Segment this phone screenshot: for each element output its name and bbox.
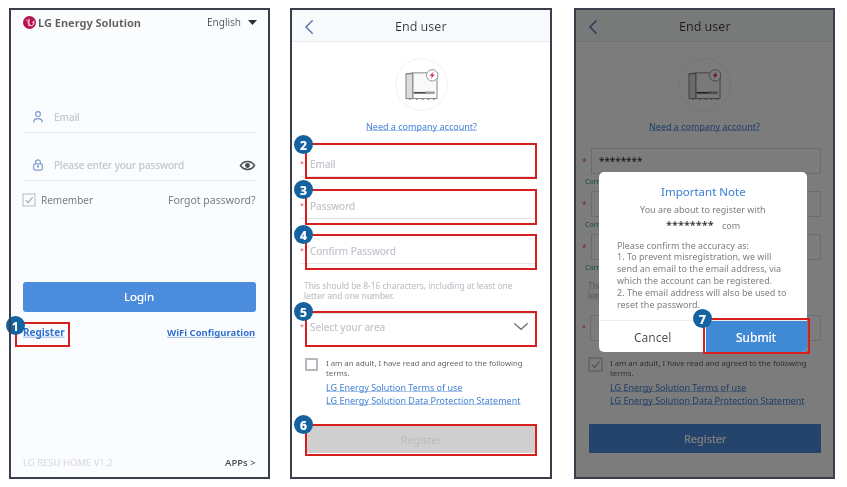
button[interactable]: APPs > — [225, 456, 256, 469]
button[interactable]: Cancel — [599, 321, 706, 352]
staticText: Please enter your password — [54, 158, 185, 172]
button[interactable]: Forgot password? — [168, 193, 256, 207]
staticText: Correct — [585, 177, 610, 187]
staticText: Cancel — [634, 329, 672, 345]
staticText: * — [300, 159, 304, 169]
staticText: * — [582, 156, 587, 167]
staticText: 1 — [12, 318, 19, 334]
staticText: Confirm Password — [310, 244, 396, 258]
staticText: LG Energy Solution Data Protection State… — [610, 394, 805, 406]
staticText: I am an adult, I have read and agreed to… — [326, 358, 523, 378]
button[interactable]: Need a company account? — [366, 120, 477, 132]
staticText: Submit — [736, 329, 777, 345]
staticText: * — [582, 199, 587, 210]
staticText: LG Energy Solution Terms of use — [610, 381, 747, 393]
staticText: * — [582, 242, 587, 253]
staticText: End user — [395, 18, 447, 35]
button[interactable]: * — [300, 194, 538, 218]
staticText: Password — [310, 199, 356, 213]
button[interactable]: * — [300, 314, 528, 339]
staticText: LG RESU HOME V1.2 — [23, 456, 113, 469]
button[interactable]: Back — [298, 16, 320, 38]
staticText: * — [582, 323, 586, 333]
staticText: ******** — [599, 154, 643, 168]
staticText: I am an adult, I have read and agreed to… — [610, 358, 807, 378]
button[interactable]: * — [300, 152, 538, 176]
staticText: Remember — [41, 193, 94, 207]
staticText: * — [300, 246, 304, 256]
staticText: Email — [54, 110, 80, 124]
staticText: LG Energy Solution — [38, 15, 141, 30]
button[interactable]: Show password — [238, 158, 256, 172]
staticText: This should be 8-16 characters, includin… — [588, 280, 797, 301]
staticText: * — [300, 322, 304, 332]
button[interactable]: Back — [582, 16, 604, 38]
button[interactable]: Remember — [23, 193, 94, 207]
button[interactable]: LG Energy Solution Terms of use — [326, 381, 463, 393]
staticText: Login — [124, 289, 155, 305]
staticText: Register — [401, 433, 442, 447]
staticText: End user — [679, 18, 731, 35]
staticText: English — [207, 15, 242, 29]
staticText: Correct — [585, 220, 610, 230]
button[interactable]: WiFi Configuration — [167, 326, 256, 339]
staticText: Please confirm the accuracy as: 1. To pr… — [617, 239, 787, 311]
staticText: 6 — [300, 417, 307, 433]
button[interactable]: Register — [307, 426, 536, 453]
staticText: Important Note — [661, 184, 746, 200]
button[interactable]: Login — [23, 282, 256, 312]
staticText: 5 — [300, 304, 307, 320]
staticText: Select your area — [310, 320, 386, 334]
staticText: E — [598, 321, 604, 335]
staticText: Correct — [585, 263, 610, 273]
staticText: 3 — [300, 182, 307, 198]
button[interactable]: Register — [23, 325, 65, 339]
staticText: * — [300, 201, 304, 211]
button[interactable]: LG Energy Solution Data Protection State… — [326, 394, 521, 406]
staticText: You are about to register with — [640, 203, 766, 215]
button[interactable]: I am an adult checkbox — [305, 358, 318, 371]
staticText: 2 — [300, 137, 307, 153]
staticText: This should be 8-16 characters, includin… — [304, 280, 513, 301]
staticText: ******** — [666, 217, 714, 232]
staticText: com — [722, 219, 741, 231]
button[interactable]: English — [207, 15, 257, 29]
button[interactable]: Email — [32, 107, 256, 127]
button[interactable]: Submit — [706, 321, 807, 352]
staticText: Register — [684, 431, 727, 446]
staticText: 7 — [699, 311, 706, 327]
staticText: Email — [310, 157, 336, 171]
staticText: Need a company account? — [649, 120, 760, 132]
staticText: 4 — [300, 227, 307, 243]
button[interactable]: * — [300, 239, 538, 263]
